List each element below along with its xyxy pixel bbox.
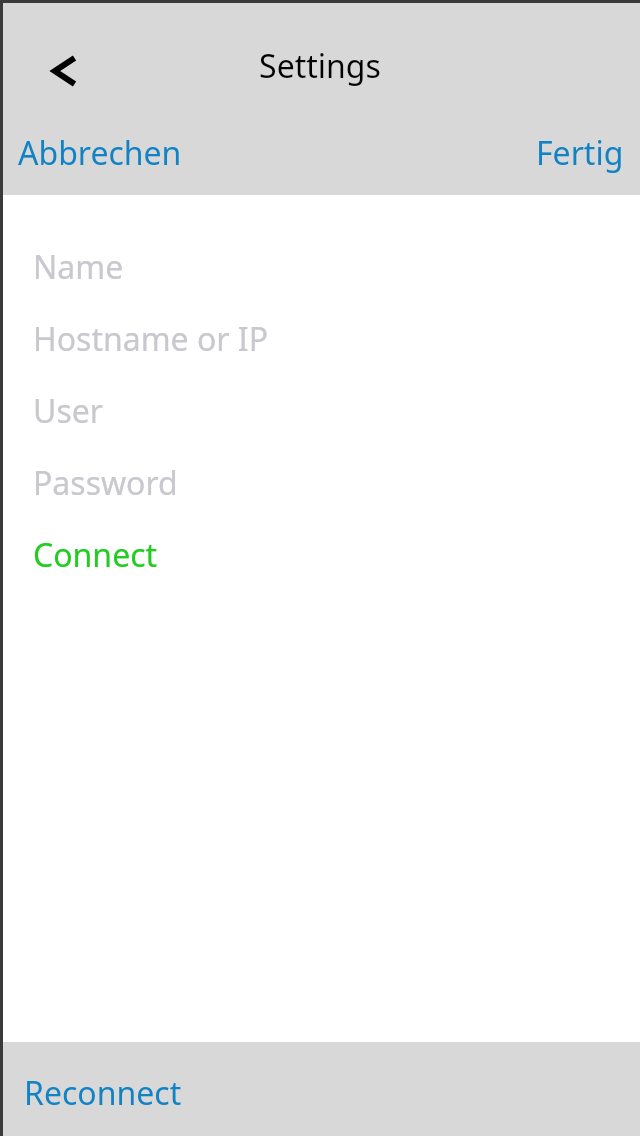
- button[interactable]: Abbrechen: [0, 125, 192, 181]
- staticText: Reconnect: [24, 1071, 182, 1115]
- button[interactable]: Reconnect: [0, 1065, 194, 1121]
- button[interactable]: Hostname or IP: [0, 303, 640, 375]
- staticText: Fertig: [536, 131, 624, 175]
- button[interactable]: Password: [0, 447, 640, 519]
- button[interactable]: Back: [34, 40, 96, 102]
- staticText: Password: [33, 461, 178, 505]
- staticText: User: [33, 389, 103, 433]
- staticText: Connect: [33, 533, 158, 577]
- staticText: Hostname or IP: [33, 317, 269, 361]
- button[interactable]: User: [0, 375, 640, 447]
- staticText: Abbrechen: [18, 131, 182, 175]
- button[interactable]: Name: [0, 231, 640, 303]
- staticText: Name: [33, 245, 124, 289]
- staticText: Settings: [0, 44, 640, 88]
- button[interactable]: Fertig: [526, 125, 640, 181]
- button[interactable]: Connect: [0, 519, 640, 591]
